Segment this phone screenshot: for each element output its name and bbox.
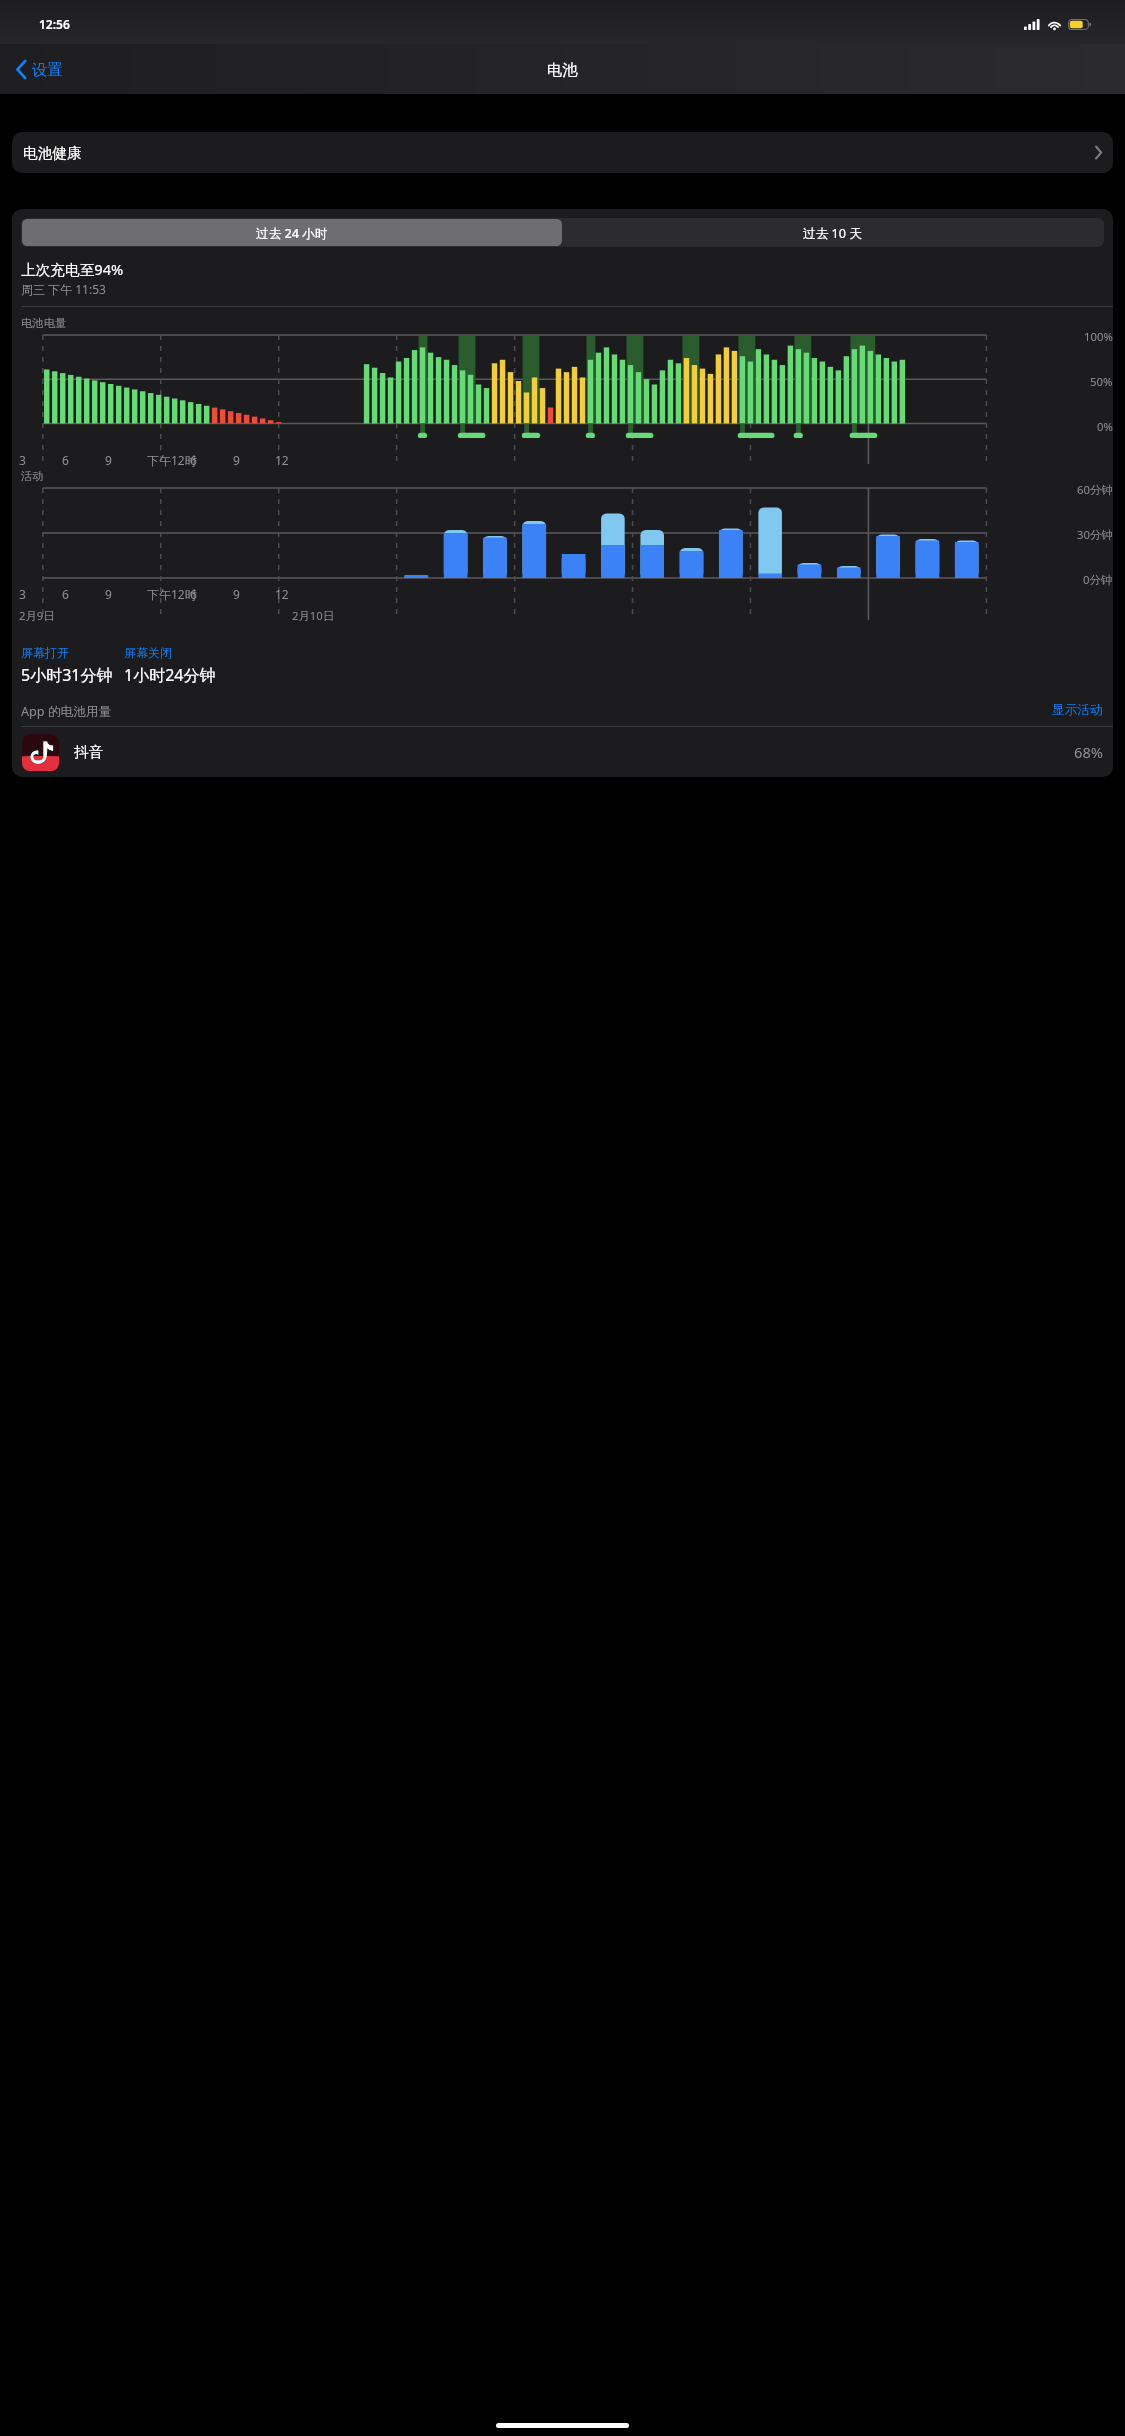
staticText: 30分钟 [1077,527,1113,542]
button[interactable]: 抖音 [12,727,1113,777]
staticText: 电池健康 [23,144,82,162]
staticText: 6 [62,452,69,468]
staticText: 2月10日 [292,608,335,623]
staticText: 5小时31分钟 [21,664,113,686]
staticText: 抖音 [74,743,104,761]
staticText: 屏幕打开 [21,645,69,660]
staticText: 周三 下午 11:53 [21,281,106,297]
staticText: 6 [190,586,197,602]
staticText: 电池 [547,60,578,79]
button[interactable]: 电池健康 [12,132,1113,173]
staticText: 3 [19,586,26,602]
button[interactable]: 过去 10 天 [562,219,1103,246]
staticText: 显示活动 [1052,702,1103,718]
staticText: 6 [62,586,69,602]
staticText: 0分钟 [1083,572,1113,587]
staticText: 上次充电至94% [21,259,124,279]
staticText: 3 [19,452,26,468]
staticText: 68% [1074,742,1103,762]
staticText: 屏幕关闭 [124,645,172,660]
staticText: 2月9日 [19,608,55,623]
staticText: 12 [275,586,289,602]
staticText: 过去 24 小时 [256,224,328,241]
staticText: 设置 [32,60,63,79]
staticText: App 的电池用量 [21,702,112,719]
staticText: 60分钟 [1077,482,1113,497]
other: Cellular [1024,19,1041,30]
staticText: 12:56 [39,16,70,32]
staticText: 12 [275,452,289,468]
staticText: 9 [105,452,112,468]
staticText: 6 [190,452,197,468]
staticText: 9 [233,452,240,468]
other: Battery [1068,19,1092,30]
staticText: 50% [1090,374,1113,389]
staticText: 9 [105,586,112,602]
button[interactable]: 过去 24 小时 [22,219,562,246]
other: Wi-Fi [1047,19,1062,30]
staticText: 100% [1084,329,1113,344]
button[interactable]: 设置 [12,57,67,82]
staticText: 电池电量 [21,316,67,330]
staticText: 0% [1097,419,1113,434]
staticText: 活动 [21,469,44,483]
staticText: 下午12时 [147,452,197,468]
staticText: 9 [233,586,240,602]
staticText: 1小时24分钟 [124,664,216,686]
button[interactable]: 显示活动 [1051,701,1104,719]
staticText: 过去 10 天 [803,224,863,241]
staticText: 下午12时 [147,586,197,602]
